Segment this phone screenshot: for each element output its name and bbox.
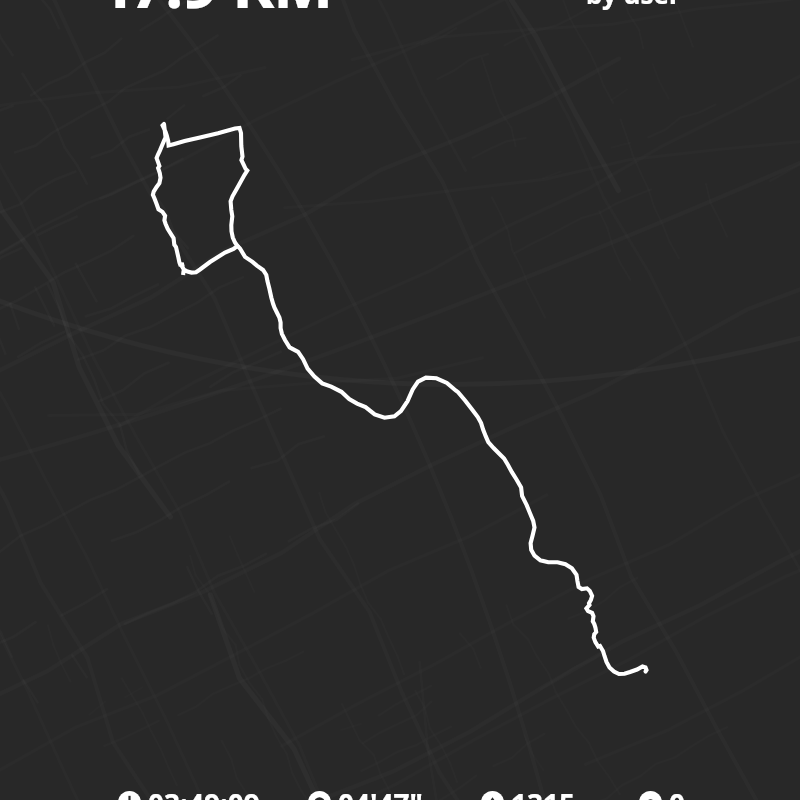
staticText: 04'47" (338, 785, 423, 800)
button[interactable]: Duration (118, 790, 260, 800)
button[interactable]: 47.9 KM (95, 0, 332, 27)
button[interactable]: Activity route map (0, 0, 800, 800)
button[interactable]: by user (586, 0, 681, 11)
staticText: 1315 (511, 785, 576, 800)
button[interactable]: Elevation (481, 790, 576, 800)
staticText: by user (586, 0, 681, 11)
staticText: 0 (669, 785, 686, 800)
button[interactable]: Pace (308, 790, 423, 800)
staticText: 03:49:09 (148, 785, 260, 800)
staticText: 47.9 KM (95, 0, 332, 27)
button[interactable]: Calories (639, 790, 686, 800)
